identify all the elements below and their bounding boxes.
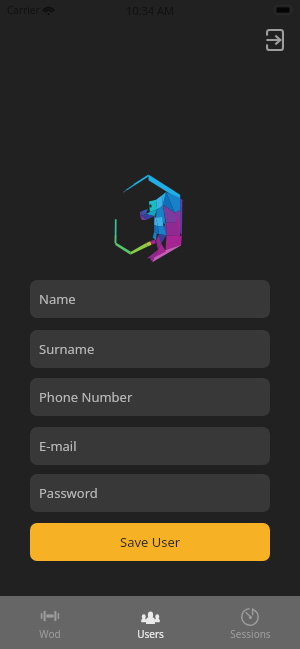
staticText: Users [137,627,164,641]
staticText: Surname [39,340,95,358]
staticText: Sessions [230,627,271,641]
staticText: Save User [120,533,181,551]
button[interactable]: Surname [30,330,270,368]
button[interactable]: Users [100,596,200,649]
button[interactable]: Name [30,280,270,318]
button[interactable]: Phone Number [30,378,270,416]
button[interactable]: Save User [30,523,270,561]
staticText: 10:34 AM [126,3,174,18]
button[interactable]: Sessions [200,596,300,649]
staticText: Phone Number [39,388,133,406]
staticText: E-mail [39,437,77,455]
staticText: Password [39,484,98,502]
staticText: Name [39,290,76,308]
button[interactable]: Wod [0,596,100,649]
button[interactable]: E-mail [30,427,270,465]
button[interactable]: Log out [260,25,290,55]
staticText: Carrier [7,3,40,17]
button[interactable]: Password [30,474,270,512]
staticText: Wod [39,627,61,641]
